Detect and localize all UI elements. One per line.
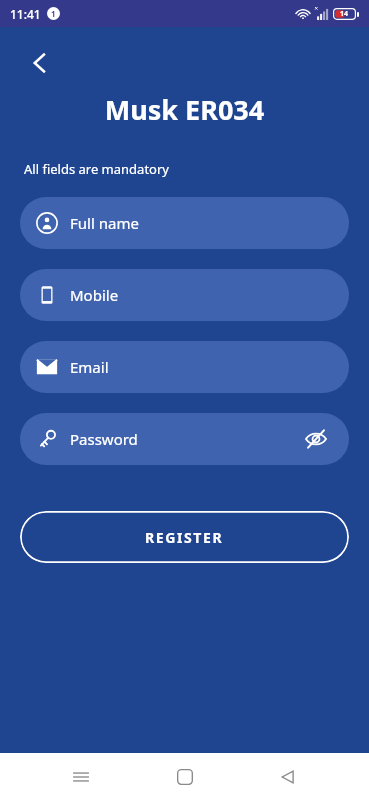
button[interactable]: Back xyxy=(266,755,310,799)
staticText: 1 xyxy=(51,8,56,19)
staticText: Email xyxy=(70,357,109,377)
button[interactable]: Recent apps xyxy=(59,755,103,799)
button[interactable]: REGISTER xyxy=(20,511,349,563)
staticText: 11:41 xyxy=(10,6,41,22)
staticText: 14 xyxy=(340,9,349,19)
staticText: Password xyxy=(70,429,138,449)
staticText: REGISTER xyxy=(145,528,224,547)
staticText: Full name xyxy=(70,213,139,233)
staticText: All fields are mandatory xyxy=(24,160,169,178)
staticText: Musk ER034 xyxy=(0,91,369,128)
button[interactable]: Mobile xyxy=(20,269,349,321)
button[interactable]: Home xyxy=(163,755,207,799)
button[interactable]: Email xyxy=(20,341,349,393)
button[interactable]: Back xyxy=(18,41,62,85)
staticText: Mobile xyxy=(70,285,119,305)
button[interactable]: Full name xyxy=(20,197,349,249)
button[interactable]: Show password xyxy=(299,422,333,456)
button[interactable]: Password xyxy=(20,413,349,465)
